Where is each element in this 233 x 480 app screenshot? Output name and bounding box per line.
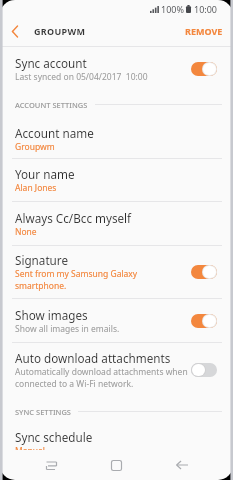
button[interactable]: Show images toggle — [191, 314, 217, 328]
button[interactable]: REMOVE — [185, 16, 223, 46]
staticText: Manual — [15, 445, 45, 450]
button[interactable]: Back — [149, 452, 214, 478]
staticText: smartphone. — [15, 280, 67, 292]
staticText: None — [15, 226, 37, 238]
button[interactable]: Navigate up — [0, 16, 29, 46]
staticText: Your name — [15, 166, 75, 182]
staticText: Sync schedule — [15, 429, 93, 445]
staticText: Sync account — [15, 55, 87, 71]
button[interactable]: Auto download attachments toggle — [191, 363, 217, 377]
staticText: connected to a Wi-Fi network. — [15, 378, 134, 390]
staticText: Alan Jones — [15, 182, 57, 194]
staticText: GROUPWM — [34, 25, 86, 37]
staticText: Automatically download attachments when — [15, 366, 188, 378]
button[interactable]: Sync schedule — [0, 426, 233, 450]
staticText: Groupwm — [15, 141, 55, 153]
button[interactable]: Recent apps — [19, 452, 84, 478]
button[interactable]: Show images — [0, 299, 233, 342]
staticText: REMOVE — [185, 25, 223, 37]
staticText: SYNC SETTINGS — [15, 407, 71, 417]
button[interactable]: Auto download attachments — [0, 343, 233, 397]
staticText: 10:00 — [194, 3, 218, 15]
button[interactable]: Always Cc/Bcc myself — [0, 202, 233, 245]
button[interactable]: Home — [84, 452, 149, 478]
button[interactable]: Account name — [0, 119, 233, 158]
staticText: Show images — [15, 307, 88, 323]
staticText: Signature — [15, 252, 69, 268]
staticText: ACCOUNT SETTINGS — [15, 100, 88, 110]
staticText: Sent from my Samsung Galaxy — [15, 268, 138, 280]
staticText: Account name — [15, 125, 94, 141]
button[interactable]: Signature — [0, 246, 233, 298]
button[interactable]: Signature toggle — [191, 265, 217, 279]
staticText: Last synced on 05/04/2017 10:00 — [15, 71, 148, 83]
staticText: Show all images in emails. — [15, 323, 120, 335]
button[interactable]: Sync account — [0, 47, 233, 90]
staticText: Always Cc/Bcc myself — [15, 210, 132, 226]
button[interactable]: Sync account toggle — [191, 62, 217, 76]
button[interactable]: Your name — [0, 159, 233, 201]
staticText: 100% — [161, 3, 184, 15]
staticText: Auto download attachments — [15, 350, 171, 366]
